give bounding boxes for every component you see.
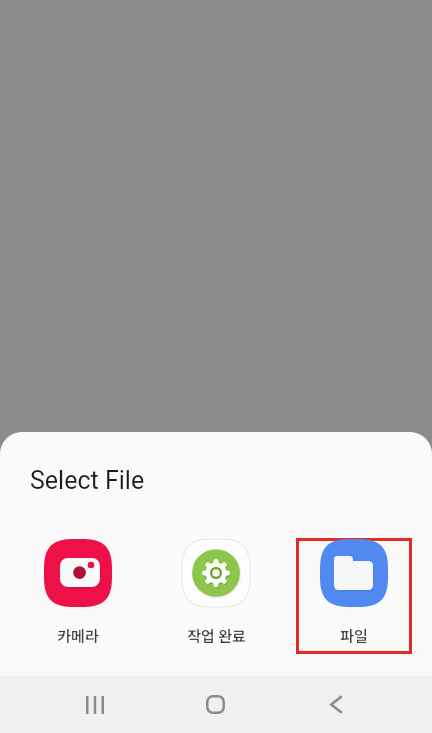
button[interactable]: Back xyxy=(308,676,365,733)
staticText: 작업 완료 xyxy=(187,625,246,647)
button[interactable]: 카메라 xyxy=(20,538,136,654)
staticText: 파일 xyxy=(340,625,368,647)
staticText: Select File xyxy=(30,466,145,495)
staticText: 카메라 xyxy=(57,625,99,647)
button[interactable]: 파일 xyxy=(296,538,412,654)
button[interactable]: Home xyxy=(187,676,244,733)
button[interactable]: 작업 완료 xyxy=(158,538,274,654)
button[interactable]: Recent apps xyxy=(66,676,123,733)
